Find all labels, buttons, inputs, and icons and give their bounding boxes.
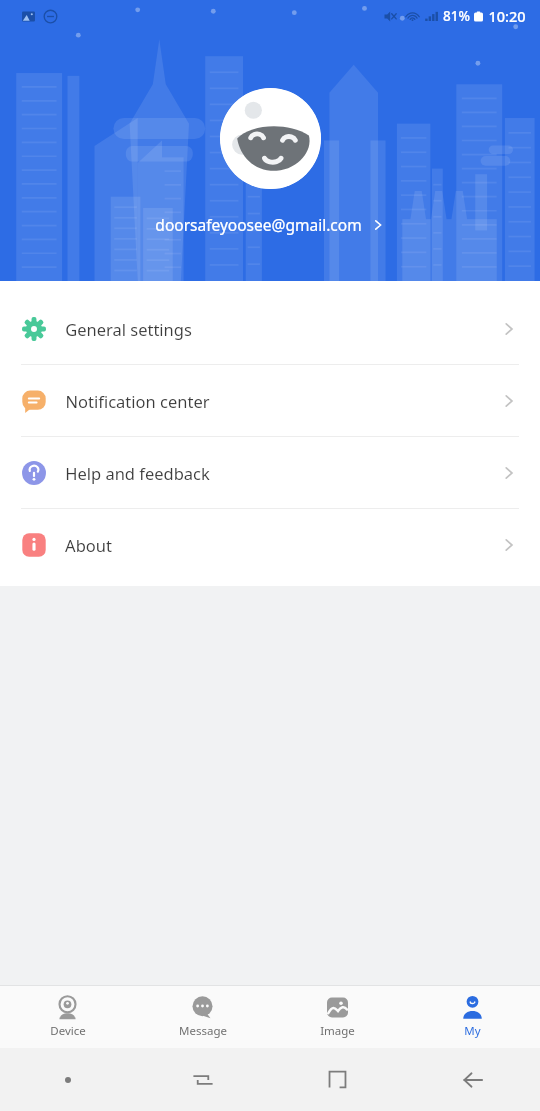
button[interactable]: Help and feedback: [0, 437, 540, 509]
button[interactable]: Notification center: [0, 365, 540, 437]
staticText: About: [65, 534, 112, 556]
staticText: 10:20: [488, 6, 526, 26]
button[interactable]: About: [0, 509, 540, 580]
staticText: Image: [320, 1023, 355, 1039]
staticText: Message: [179, 1023, 227, 1039]
button[interactable]: Home: [270, 1048, 405, 1111]
staticText: 81%: [443, 7, 470, 25]
staticText: General settings: [65, 318, 192, 340]
button[interactable]: doorsafeyoosee@gmail.com: [147, 210, 394, 239]
staticText: Notification center: [65, 390, 210, 412]
staticText: doorsafeyoosee@gmail.com: [155, 214, 362, 235]
button[interactable]: My: [405, 989, 540, 1045]
button[interactable]: General settings: [0, 293, 540, 365]
button[interactable]: Message: [135, 989, 270, 1045]
button[interactable]: Back: [405, 1048, 540, 1111]
staticText: My: [464, 1023, 481, 1039]
button[interactable]: Profile picture: [220, 88, 321, 189]
staticText: Help and feedback: [65, 462, 210, 484]
button[interactable]: Image: [270, 989, 405, 1045]
button[interactable]: Recents: [135, 1048, 270, 1111]
button[interactable]: Device: [0, 989, 135, 1045]
staticText: Device: [50, 1023, 86, 1039]
